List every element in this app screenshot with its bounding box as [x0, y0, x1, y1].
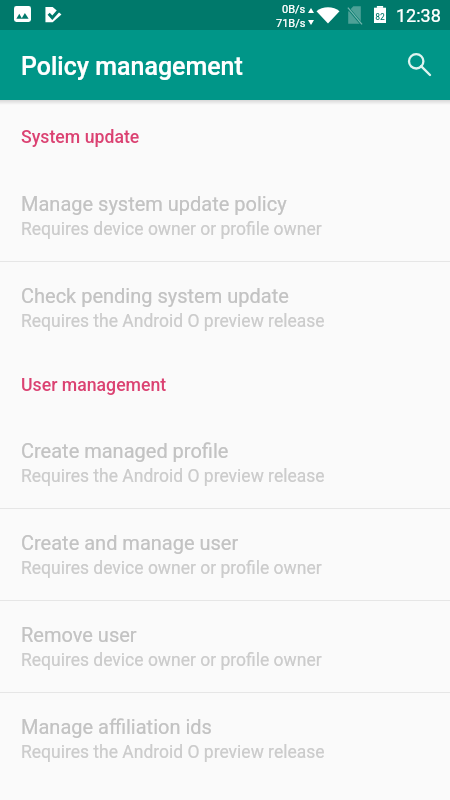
- staticText: Manage system update policy: [21, 192, 287, 215]
- staticText: System update: [21, 127, 140, 148]
- staticText: Requires the Android O preview release: [21, 466, 325, 487]
- staticText: 12:38: [396, 5, 441, 26]
- staticText: Requires device owner or profile owner: [21, 650, 322, 671]
- staticText: Create managed profile: [21, 439, 229, 462]
- staticText: Requires device owner or profile owner: [21, 558, 322, 579]
- button[interactable]: Search: [394, 37, 450, 93]
- staticText: 0B/s: [282, 3, 306, 16]
- button[interactable]: Create and manage user: [0, 509, 450, 600]
- staticText: Requires device owner or profile owner: [21, 219, 322, 240]
- staticText: Create and manage user: [21, 531, 239, 554]
- button[interactable]: Manage system update policy: [0, 170, 450, 261]
- staticText: Requires the Android O preview release: [21, 742, 325, 763]
- staticText: Requires the Android O preview release: [21, 311, 325, 332]
- button[interactable]: Create managed profile: [0, 417, 450, 508]
- button[interactable]: Remove user: [0, 601, 450, 692]
- staticText: 82: [374, 12, 386, 22]
- button[interactable]: Manage affiliation ids: [0, 693, 450, 784]
- button[interactable]: Check pending system update: [0, 262, 450, 353]
- staticText: User management: [21, 375, 167, 396]
- staticText: 71B/s: [276, 17, 306, 30]
- staticText: Check pending system update: [21, 284, 289, 307]
- staticText: Manage affiliation ids: [21, 715, 212, 738]
- staticText: Policy management: [21, 52, 243, 81]
- staticText: Remove user: [21, 623, 137, 646]
